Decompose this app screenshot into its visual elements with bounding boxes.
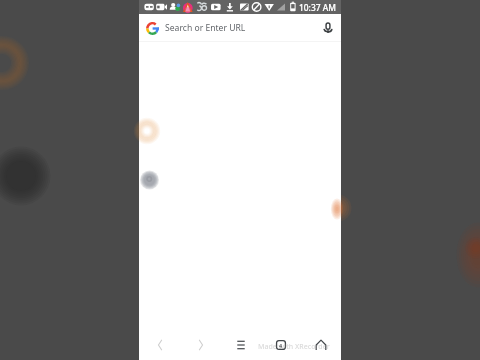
- staticText: Made with XRecorder: [258, 342, 330, 352]
- button[interactable]: Forward: [180, 330, 221, 360]
- button[interactable]: Voice search: [319, 19, 337, 37]
- staticText: 4: [279, 342, 283, 349]
- button[interactable]: Search or Enter URL: [139, 14, 341, 42]
- button[interactable]: Menu: [221, 330, 261, 360]
- staticText: 10:37 AM: [299, 2, 336, 13]
- button[interactable]: Home: [301, 330, 341, 360]
- button[interactable]: Back: [139, 330, 180, 360]
- staticText: Search or Enter URL: [165, 22, 246, 34]
- button[interactable]: Tabs: [261, 330, 301, 360]
